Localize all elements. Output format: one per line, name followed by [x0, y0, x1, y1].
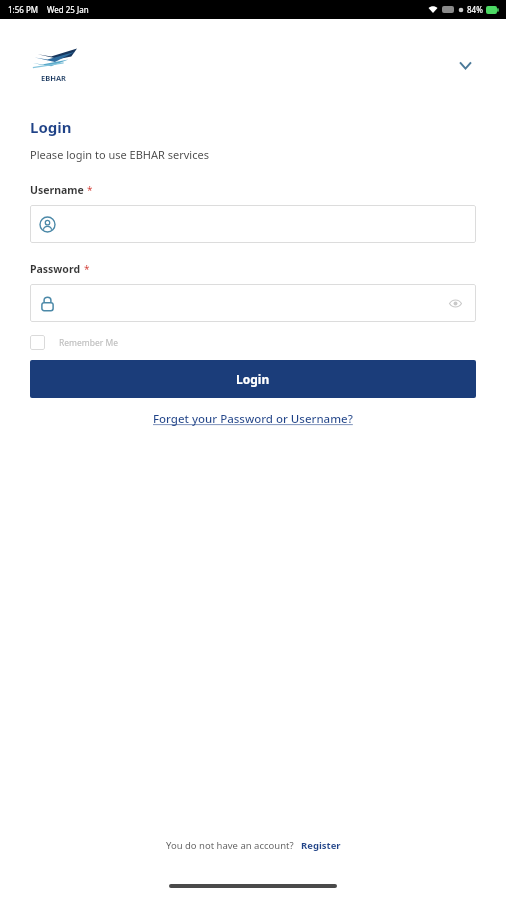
- button[interactable]: Select language: [450, 50, 480, 80]
- button[interactable]: [30, 205, 476, 243]
- button[interactable]: Register: [301, 839, 341, 852]
- staticText: Please login to use EBHAR services: [30, 147, 209, 162]
- staticText: *: [87, 183, 93, 197]
- staticText: 1:56 PM: [8, 4, 39, 15]
- button[interactable]: EBHAR logo: [30, 47, 78, 83]
- button[interactable]: Forget your Password or Username?: [153, 411, 353, 427]
- staticText: 84%: [467, 4, 483, 15]
- staticText: Wed 25 Jan: [47, 4, 89, 15]
- staticText: Remember Me: [59, 337, 119, 349]
- staticText: Password: [30, 262, 81, 276]
- staticText: You do not have an account?: [166, 839, 294, 852]
- staticText: Login: [30, 117, 72, 137]
- staticText: Login: [236, 371, 270, 387]
- staticText: *: [84, 262, 90, 276]
- staticText: Username: [30, 183, 84, 197]
- button[interactable]: Show password: [445, 293, 465, 313]
- button[interactable]: Login: [30, 360, 476, 398]
- button[interactable]: Remember Me: [30, 335, 119, 350]
- button[interactable]: Show password: [30, 284, 476, 322]
- staticText: EBHAR: [41, 73, 67, 83]
